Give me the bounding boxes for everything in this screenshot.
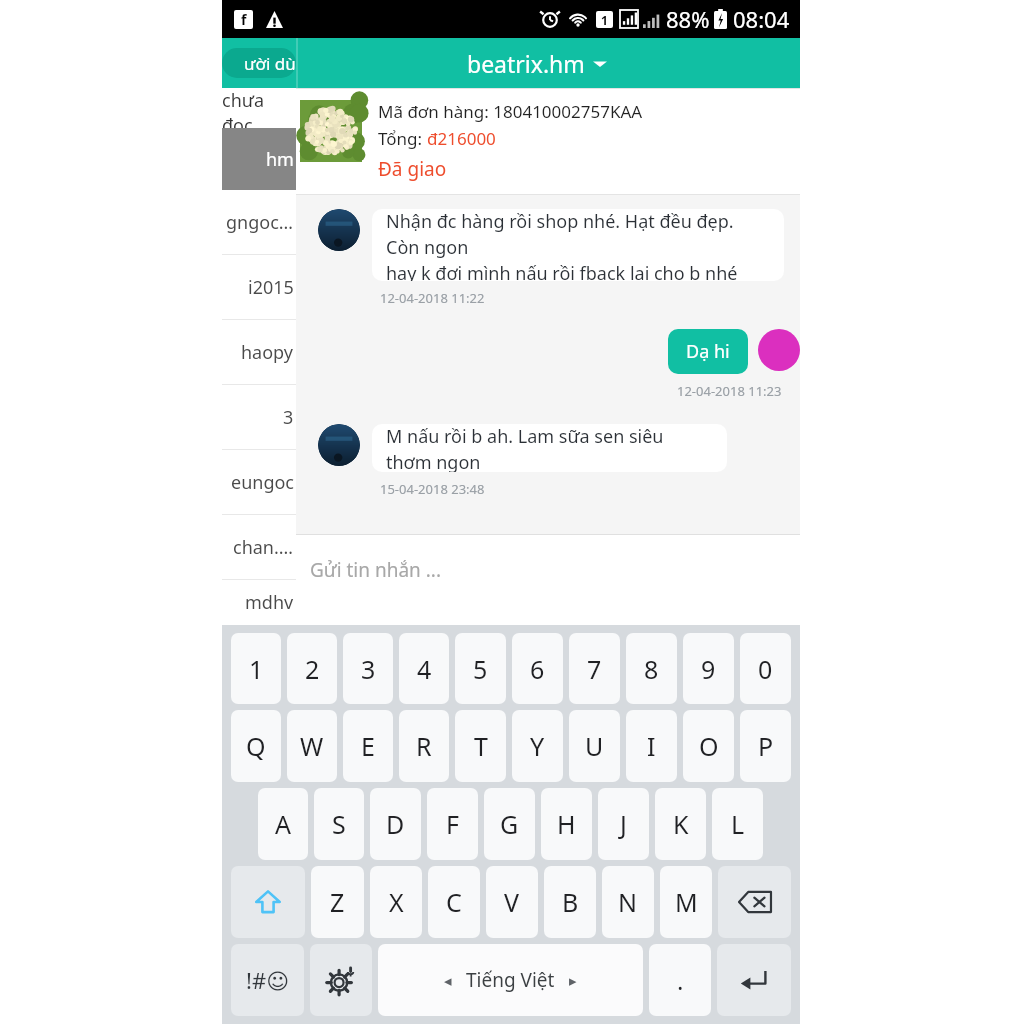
staticText: T [474,729,488,763]
button[interactable]: P [740,710,791,782]
button[interactable]: 4 [399,633,449,704]
button[interactable]: 8 [626,633,677,704]
staticText: 12-04-2018 11:23 [677,382,782,400]
button[interactable]: W [287,710,337,782]
staticText: ◂ [444,972,452,989]
staticText: R [416,729,432,763]
button[interactable]: Dạ hi [668,329,748,374]
button[interactable]: O [683,710,734,782]
button[interactable]: S [314,788,364,860]
button[interactable]: Mã đơn hàng: 180410002757KAA [222,88,800,195]
staticText: I [647,729,656,763]
button[interactable]: Backspace [718,866,791,938]
button[interactable]: I [626,710,677,782]
button[interactable]: F [427,788,478,860]
button[interactable]: 9 [683,633,734,704]
staticText: Y [530,729,545,763]
button[interactable]: V [486,866,538,938]
staticText: !#☺ [246,965,290,995]
button[interactable]: Z [311,866,364,938]
button[interactable]: 3 [222,385,296,449]
button[interactable]: eungoc [222,450,296,514]
button[interactable]: chan.… [222,515,296,579]
staticText: 9 [701,652,716,686]
button[interactable]: 1 [231,633,281,704]
staticText: F [446,807,459,841]
button[interactable]: hm [222,128,296,190]
button[interactable]: ười dù [222,48,296,78]
button[interactable]: H [541,788,592,860]
button[interactable]: 3 [343,633,393,704]
staticText: Q [246,729,266,763]
button[interactable]: i2015 [222,255,296,319]
button[interactable]: D [370,788,421,860]
button[interactable]: J [598,788,649,860]
button[interactable]: 2 [287,633,337,704]
button[interactable]: ◂ [378,944,643,1016]
button[interactable]: C [428,866,480,938]
staticText: i2015 [248,275,294,300]
button[interactable]: . [649,944,711,1016]
staticText: 2 [305,652,320,686]
staticText: mdhv [245,590,294,615]
staticText: S [332,807,346,841]
button[interactable]: Nhận đc hàng rồi shop nhé. Hạt đều đẹp. … [372,209,784,281]
button[interactable]: G [484,788,535,860]
staticText: K [673,807,689,841]
staticText: 8 [644,652,659,686]
button[interactable]: E [343,710,393,782]
staticText: 0 [758,652,773,686]
staticText: M nấu rồi b ah. Lam sữa sen siêu thơm ng… [386,424,713,472]
staticText: Đã giao [378,156,447,182]
button[interactable]: gngoc… [222,190,296,254]
staticText: beatrix.hm [467,48,585,79]
staticText: Mã đơn hàng: 180410002757KAA [378,100,643,123]
staticText: hm [266,147,294,172]
button[interactable]: U [569,710,620,782]
button[interactable]: Y [512,710,563,782]
button[interactable]: K [655,788,706,860]
staticText: haopy [241,340,294,365]
button[interactable]: Enter [717,944,791,1016]
button[interactable]: beatrix.hm [467,48,607,79]
button[interactable]: B [544,866,596,938]
staticText: 88% [666,4,710,34]
button[interactable]: N [602,866,654,938]
staticText: L [731,807,745,841]
staticText: 1 [249,652,264,686]
button[interactable]: Symbols [231,944,304,1016]
button[interactable]: haopy [222,320,296,384]
staticText: 08:04 [733,4,790,34]
staticText: Z [330,885,345,919]
staticText: Gửi tin nhắn ... [310,557,442,583]
button[interactable]: Q [231,710,281,782]
button[interactable]: mdhv [222,580,296,625]
staticText: 12-04-2018 11:22 [380,289,485,307]
button[interactable]: M nấu rồi b ah. Lam sữa sen siêu thơm ng… [372,424,727,472]
button[interactable]: 6 [512,633,563,704]
staticText: 5 [473,652,488,686]
button[interactable]: 5 [455,633,506,704]
staticText: X [389,885,404,919]
staticText: W [300,729,324,763]
button[interactable]: M [660,866,712,938]
staticText: chưa đọc [222,88,294,128]
button[interactable]: Settings [310,944,372,1016]
staticText: Tổng: [378,127,427,150]
button[interactable]: A [258,788,308,860]
button[interactable]: Gửi tin nhắn ... [222,535,800,625]
staticText: C [446,885,462,919]
staticText: gngoc… [226,210,294,235]
button[interactable]: R [399,710,449,782]
staticText: H [557,807,576,841]
button[interactable]: Shift [231,866,305,938]
button[interactable]: 0 [740,633,791,704]
staticText: A [275,807,291,841]
button[interactable]: T [455,710,506,782]
button[interactable]: 7 [569,633,620,704]
staticText: Tiếng Việt [466,967,555,993]
staticText: B [562,885,579,919]
button[interactable]: X [370,866,422,938]
staticText: f [241,10,247,29]
button[interactable]: L [712,788,763,860]
